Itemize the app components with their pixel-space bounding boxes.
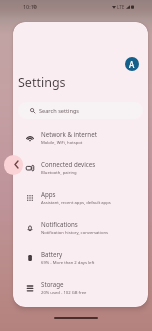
staticText: LTE [117,4,125,10]
button[interactable]: Storage [13,272,148,302]
button[interactable]: Battery [13,242,148,272]
staticText: Notification history, conversations [41,230,109,236]
button[interactable]: Back [4,155,23,175]
staticText: Storage [41,280,64,288]
staticText: Bluetooth, pairing [41,170,77,176]
staticText: Apps [41,190,56,198]
staticText: Settings [18,74,66,91]
button[interactable]: Apps [13,182,148,212]
button[interactable]: Connected devices [13,152,148,182]
staticText: Network & internet [41,130,97,138]
staticText: Battery [41,250,63,258]
button[interactable]: Search settings [18,102,143,119]
button[interactable]: Account [125,57,139,71]
staticText: 10:10 [23,3,37,10]
staticText: Notifications [41,220,78,228]
staticText: Connected devices [41,160,96,168]
staticText: 69% - More than 2 days left [41,260,95,266]
staticText: 20% used - 102 GB free [41,290,87,296]
staticText: Assistant, recent apps, default apps [41,200,111,206]
button[interactable]: Network & internet [13,122,148,152]
staticText: Mobile, WiFi, hotspot [41,140,83,146]
staticText: A [129,59,135,70]
staticText: Search settings [39,107,80,115]
button[interactable]: Notifications [13,212,148,242]
